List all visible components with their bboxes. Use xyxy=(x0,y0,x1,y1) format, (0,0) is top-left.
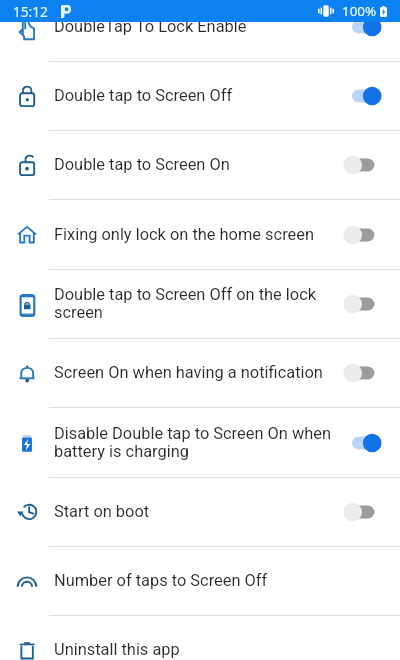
button[interactable]: Enabled toggle xyxy=(341,423,383,463)
staticText: Number of taps to Screen Off xyxy=(54,571,338,590)
button[interactable]: Notification xyxy=(0,339,400,408)
staticText: DoubleTap To Lock Enable xyxy=(54,17,338,36)
other: Number of taps xyxy=(16,571,38,593)
button[interactable]: Enabled toggle xyxy=(341,76,383,116)
button[interactable]: Start on boot xyxy=(0,478,400,547)
staticText: Start on boot xyxy=(54,502,338,521)
button[interactable]: Home screen xyxy=(0,201,400,270)
button[interactable]: Disabled toggle xyxy=(341,215,383,255)
button[interactable]: Uninstall xyxy=(0,616,400,660)
staticText: Double tap to Screen Off on the lock scr… xyxy=(54,285,338,322)
button[interactable]: Number of taps xyxy=(0,547,400,616)
staticText: Disable Double tap to Screen On when bat… xyxy=(54,424,338,461)
staticText: 15:12 xyxy=(13,2,48,21)
button[interactable]: Lock screen xyxy=(0,270,400,339)
other: Locked xyxy=(16,86,38,108)
button[interactable]: Disabled toggle xyxy=(341,145,383,185)
staticText: Fixing only lock on the home screen xyxy=(54,225,338,244)
other: Start on boot xyxy=(16,502,38,524)
staticText: Uninstall this app xyxy=(54,640,338,659)
other: Unlocked xyxy=(16,155,38,177)
staticText: Double tap to Screen On xyxy=(54,155,338,174)
button[interactable]: Disabled toggle xyxy=(341,353,383,393)
button[interactable]: Locked xyxy=(0,62,400,131)
other: Notification xyxy=(16,363,38,385)
button[interactable]: Disabled toggle xyxy=(341,492,383,532)
button[interactable]: Enabled toggle xyxy=(341,7,383,47)
other: Uninstall xyxy=(16,640,38,660)
button[interactable]: Unlocked xyxy=(0,131,400,200)
button[interactable]: Disabled toggle xyxy=(341,284,383,324)
staticText: 100% xyxy=(342,2,377,20)
other: Home screen xyxy=(16,225,38,247)
staticText: Screen On when having a notification xyxy=(54,363,338,382)
button[interactable]: Battery charging xyxy=(0,409,400,478)
button[interactable]: Double tap gesture xyxy=(0,0,400,62)
other: Lock screen xyxy=(16,294,38,316)
staticText: Double tap to Screen Off xyxy=(54,86,338,105)
other: Battery charging xyxy=(16,433,38,455)
other: Double tap gesture xyxy=(16,17,38,39)
